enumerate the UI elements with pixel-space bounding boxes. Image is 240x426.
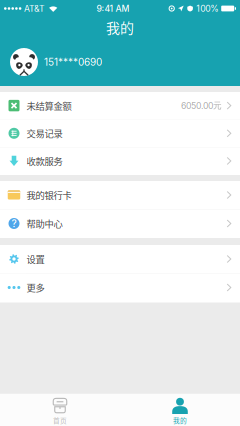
- button[interactable]: 交易记录: [0, 120, 240, 147]
- staticText: 交易记录: [26, 126, 62, 140]
- staticText: 首页: [53, 415, 67, 425]
- staticText: 设置: [26, 252, 44, 266]
- button[interactable]: 首页: [0, 393, 120, 426]
- button[interactable]: 设置: [0, 245, 240, 273]
- staticText: 6050.00元: [181, 100, 222, 111]
- staticText: 我的: [173, 415, 187, 425]
- staticText: 151****0690: [44, 56, 102, 68]
- staticText: ?: [11, 217, 16, 230]
- button[interactable]: 我的银行卡: [0, 181, 240, 209]
- staticText: 100%: [196, 3, 219, 14]
- staticText: 收款服务: [26, 154, 62, 168]
- staticText: 我的: [106, 17, 134, 37]
- staticText: 帮助中心: [26, 217, 62, 230]
- button[interactable]: 更多: [0, 273, 240, 302]
- staticText: 未结算金额: [26, 99, 71, 112]
- staticText: 9:41 AM: [97, 3, 130, 14]
- staticText: AT&T: [24, 3, 45, 14]
- button[interactable]: 收款服务: [0, 147, 240, 175]
- button[interactable]: 未结算金额: [0, 92, 240, 120]
- staticText: 我的银行卡: [26, 188, 71, 202]
- staticText: 更多: [26, 281, 44, 294]
- button[interactable]: 我的: [120, 393, 240, 426]
- button[interactable]: ?: [0, 209, 240, 238]
